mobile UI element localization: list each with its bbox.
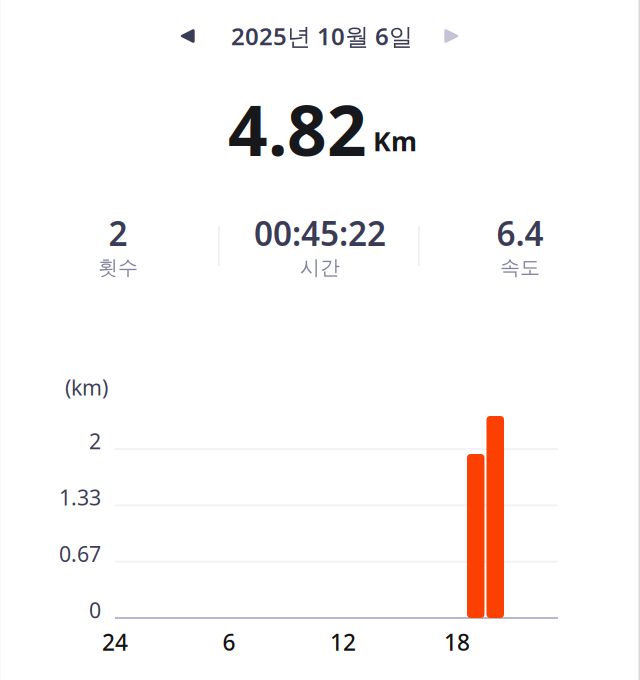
staticText: 12 [330,627,356,657]
staticText: 2 [108,211,127,255]
staticText: 0.67 [59,539,101,568]
staticText: 1.33 [59,483,101,511]
staticText: 18 [444,627,470,657]
staticText: 6 [222,627,235,657]
staticText: (km) [65,373,108,401]
staticText: 4.82 [228,83,367,175]
staticText: 속도 [500,255,540,280]
button[interactable]: Next day [430,14,474,58]
staticText: 00:45:22 [254,211,386,255]
button[interactable]: Previous day [165,14,209,58]
staticText: 시간 [300,255,340,280]
staticText: Km [373,123,417,159]
staticText: 6.4 [496,211,543,255]
staticText: 2 [89,427,101,455]
staticText: 24 [102,627,128,657]
staticText: 2025년 10월 6일 [231,20,413,52]
staticText: 0 [89,596,101,624]
staticText: 횟수 [98,255,138,280]
